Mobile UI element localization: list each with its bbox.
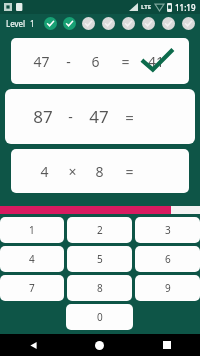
staticText: 4	[40, 162, 49, 181]
button[interactable]: 0	[66, 304, 133, 330]
staticText: 7	[29, 281, 35, 295]
staticText: 87	[33, 105, 53, 128]
staticText: 6	[91, 52, 100, 71]
staticText: 41	[148, 52, 165, 71]
staticText: ×	[68, 162, 77, 181]
button[interactable]: 4	[11, 149, 189, 193]
staticText: 47	[33, 52, 50, 71]
staticText: 5	[97, 252, 103, 266]
button[interactable]: 1	[0, 217, 64, 243]
button[interactable]: 6	[135, 246, 200, 272]
button[interactable]: 8	[67, 275, 132, 301]
button[interactable]: 87	[5, 89, 195, 144]
staticText: =	[121, 52, 130, 71]
staticText: 1	[29, 223, 35, 237]
button[interactable]: Home	[66, 334, 133, 356]
button[interactable]: 7	[0, 275, 64, 301]
staticText: -	[66, 52, 71, 71]
button[interactable]: 47	[11, 38, 189, 84]
staticText: 9	[165, 281, 171, 295]
staticText: 11:19	[175, 2, 196, 13]
button[interactable]: 9	[135, 275, 200, 301]
button[interactable]: 4	[0, 246, 64, 272]
button[interactable]: 3	[135, 217, 200, 243]
staticText: 1	[30, 18, 35, 29]
staticText: 0	[97, 310, 103, 324]
staticText: =	[125, 107, 134, 127]
staticText: =	[125, 162, 134, 181]
button[interactable]: 2	[67, 217, 132, 243]
staticText: 3	[165, 223, 171, 237]
staticText: Level	[6, 18, 26, 29]
staticText: -	[68, 107, 73, 126]
button[interactable]: Recents	[133, 334, 200, 356]
staticText: 6	[165, 252, 171, 266]
staticText: 8	[97, 281, 103, 295]
button[interactable]: 5	[67, 246, 132, 272]
staticText: 2	[97, 223, 103, 237]
button[interactable]: Back	[0, 334, 66, 356]
staticText: 4	[29, 252, 35, 266]
staticText: 47	[89, 105, 109, 128]
staticText: 8	[95, 162, 104, 181]
staticText: LTE	[141, 3, 152, 11]
